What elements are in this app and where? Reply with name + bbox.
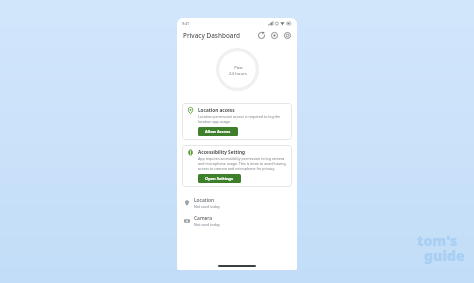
staticText: App requires accessibility permission to… [198, 156, 288, 171]
staticText: Location [194, 197, 215, 204]
staticText: Not used today [194, 204, 220, 209]
button[interactable]: Open Settings [198, 174, 241, 183]
button[interactable]: Accessibility Setting [182, 145, 292, 187]
staticText: Accessibility Setting [198, 149, 245, 155]
staticText: Allow Access [205, 129, 231, 134]
staticText: 9:41 [182, 21, 190, 26]
staticText: Privacy Dashboard [183, 31, 241, 40]
button[interactable]: Location access [182, 103, 292, 140]
button[interactable]: Settings [281, 29, 294, 42]
staticText: Location permission access is required t… [198, 114, 288, 124]
staticText: guide [424, 246, 465, 265]
button[interactable]: Location [177, 194, 297, 212]
staticText: Past [234, 64, 243, 70]
staticText: tom's [417, 231, 458, 250]
button[interactable]: Refresh [255, 29, 268, 42]
staticText: 24 hours [229, 70, 247, 76]
button[interactable]: Camera [177, 212, 297, 230]
button[interactable]: Help [268, 29, 281, 42]
staticText: Open Settings [205, 176, 234, 181]
staticText: Not used today [194, 222, 220, 227]
button[interactable]: Allow Access [198, 127, 238, 136]
staticText: Location access [198, 107, 235, 113]
staticText: Camera [194, 215, 213, 222]
